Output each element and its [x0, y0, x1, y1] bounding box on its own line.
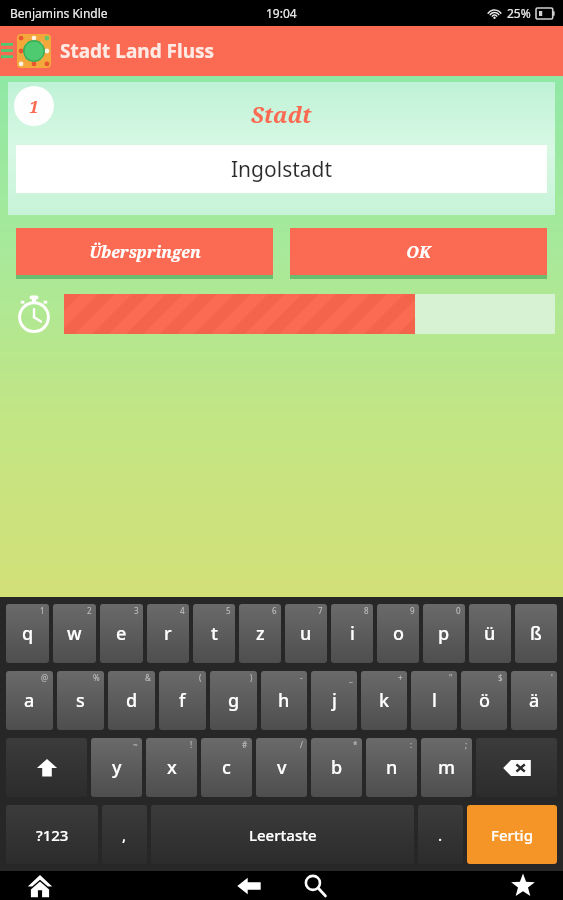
- staticText: 4: [180, 605, 185, 616]
- button[interactable]: Überspringen: [16, 228, 273, 275]
- staticText: ): [250, 672, 253, 683]
- button[interactable]: Back: [227, 871, 271, 900]
- staticText: (: [199, 672, 202, 683]
- button[interactable]: Search: [293, 871, 337, 900]
- button[interactable]: %: [57, 671, 104, 730]
- button[interactable]: Ingolstadt: [16, 145, 547, 193]
- button[interactable]: ~: [91, 738, 142, 797]
- staticText: -: [300, 672, 303, 683]
- staticText: a: [24, 688, 35, 713]
- button[interactable]: Home: [20, 871, 60, 900]
- button[interactable]: #: [201, 738, 252, 797]
- button[interactable]: 9: [377, 604, 419, 663]
- button[interactable]: ?123: [6, 805, 98, 864]
- button[interactable]: -: [261, 671, 307, 730]
- staticText: f: [179, 688, 186, 713]
- staticText: ": [449, 672, 453, 683]
- staticText: _: [349, 672, 353, 683]
- staticText: ,: [122, 825, 127, 845]
- button[interactable]: ': [511, 671, 557, 730]
- staticText: t: [211, 621, 218, 646]
- button[interactable]: .: [418, 805, 463, 864]
- button[interactable]: 7: [285, 604, 327, 663]
- staticText: 6: [272, 605, 277, 616]
- button[interactable]: ü: [469, 604, 511, 663]
- button[interactable]: $: [461, 671, 507, 730]
- button[interactable]: @: [6, 671, 53, 730]
- staticText: ö: [479, 688, 490, 713]
- button[interactable]: ß: [515, 604, 557, 663]
- staticText: Überspringen: [89, 241, 201, 263]
- button[interactable]: Fertig: [467, 805, 557, 864]
- button[interactable]: *: [311, 738, 362, 797]
- button[interactable]: Menu: [0, 26, 14, 76]
- button[interactable]: /: [256, 738, 307, 797]
- staticText: OK: [406, 241, 431, 263]
- staticText: 1: [40, 605, 45, 616]
- staticText: x: [167, 755, 177, 780]
- button[interactable]: 8: [331, 604, 373, 663]
- staticText: k: [379, 688, 390, 713]
- button[interactable]: 2: [53, 604, 96, 663]
- staticText: g: [228, 688, 240, 713]
- staticText: ß: [530, 621, 542, 646]
- button[interactable]: &: [108, 671, 155, 730]
- staticText: 19:04: [266, 5, 297, 21]
- staticText: ': [551, 672, 553, 683]
- staticText: @: [41, 672, 49, 683]
- button[interactable]: ": [411, 671, 457, 730]
- button[interactable]: Backspace: [476, 738, 557, 797]
- button[interactable]: !: [146, 738, 197, 797]
- button[interactable]: +: [361, 671, 407, 730]
- button[interactable]: 5: [193, 604, 235, 663]
- staticText: r: [164, 621, 172, 646]
- staticText: 1: [29, 95, 39, 118]
- staticText: &: [145, 672, 151, 683]
- staticText: /: [300, 739, 303, 750]
- staticText: !: [190, 739, 193, 750]
- button[interactable]: ): [210, 671, 257, 730]
- staticText: p: [438, 621, 450, 646]
- button[interactable]: (: [159, 671, 206, 730]
- staticText: 8: [364, 605, 369, 616]
- staticText: 25%: [507, 5, 531, 21]
- button[interactable]: ;: [421, 738, 472, 797]
- staticText: n: [386, 755, 398, 780]
- staticText: ü: [484, 621, 496, 646]
- staticText: 7: [318, 605, 323, 616]
- staticText: 5: [226, 605, 231, 616]
- button[interactable]: Leertaste: [151, 805, 414, 864]
- staticText: Benjamins Kindle: [10, 5, 108, 21]
- button[interactable]: 6: [239, 604, 281, 663]
- button[interactable]: :: [366, 738, 417, 797]
- button[interactable]: 3: [100, 604, 143, 663]
- button[interactable]: 1: [6, 604, 49, 663]
- staticText: 0: [456, 605, 461, 616]
- staticText: 9: [410, 605, 415, 616]
- staticText: q: [22, 621, 34, 646]
- staticText: o: [393, 621, 404, 646]
- button[interactable]: 4: [147, 604, 189, 663]
- staticText: .: [438, 825, 443, 845]
- staticText: $: [498, 672, 503, 683]
- staticText: %: [93, 672, 100, 683]
- staticText: m: [438, 755, 456, 780]
- staticText: y: [112, 755, 122, 780]
- button[interactable]: Favorites: [503, 871, 543, 900]
- staticText: i: [350, 621, 355, 646]
- staticText: d: [126, 688, 138, 713]
- button[interactable]: _: [311, 671, 357, 730]
- staticText: Leertaste: [249, 825, 317, 845]
- button[interactable]: ,: [102, 805, 147, 864]
- staticText: Stadt Land Fluss: [60, 38, 215, 64]
- staticText: :: [410, 739, 413, 750]
- staticText: Stadt: [251, 99, 312, 129]
- staticText: *: [353, 739, 358, 750]
- button[interactable]: 0: [423, 604, 465, 663]
- button[interactable]: Shift: [6, 738, 87, 797]
- staticText: w: [67, 621, 82, 646]
- staticText: Ingolstadt: [231, 155, 333, 184]
- staticText: v: [277, 755, 287, 780]
- button[interactable]: OK: [290, 228, 547, 275]
- staticText: Fertig: [491, 825, 533, 845]
